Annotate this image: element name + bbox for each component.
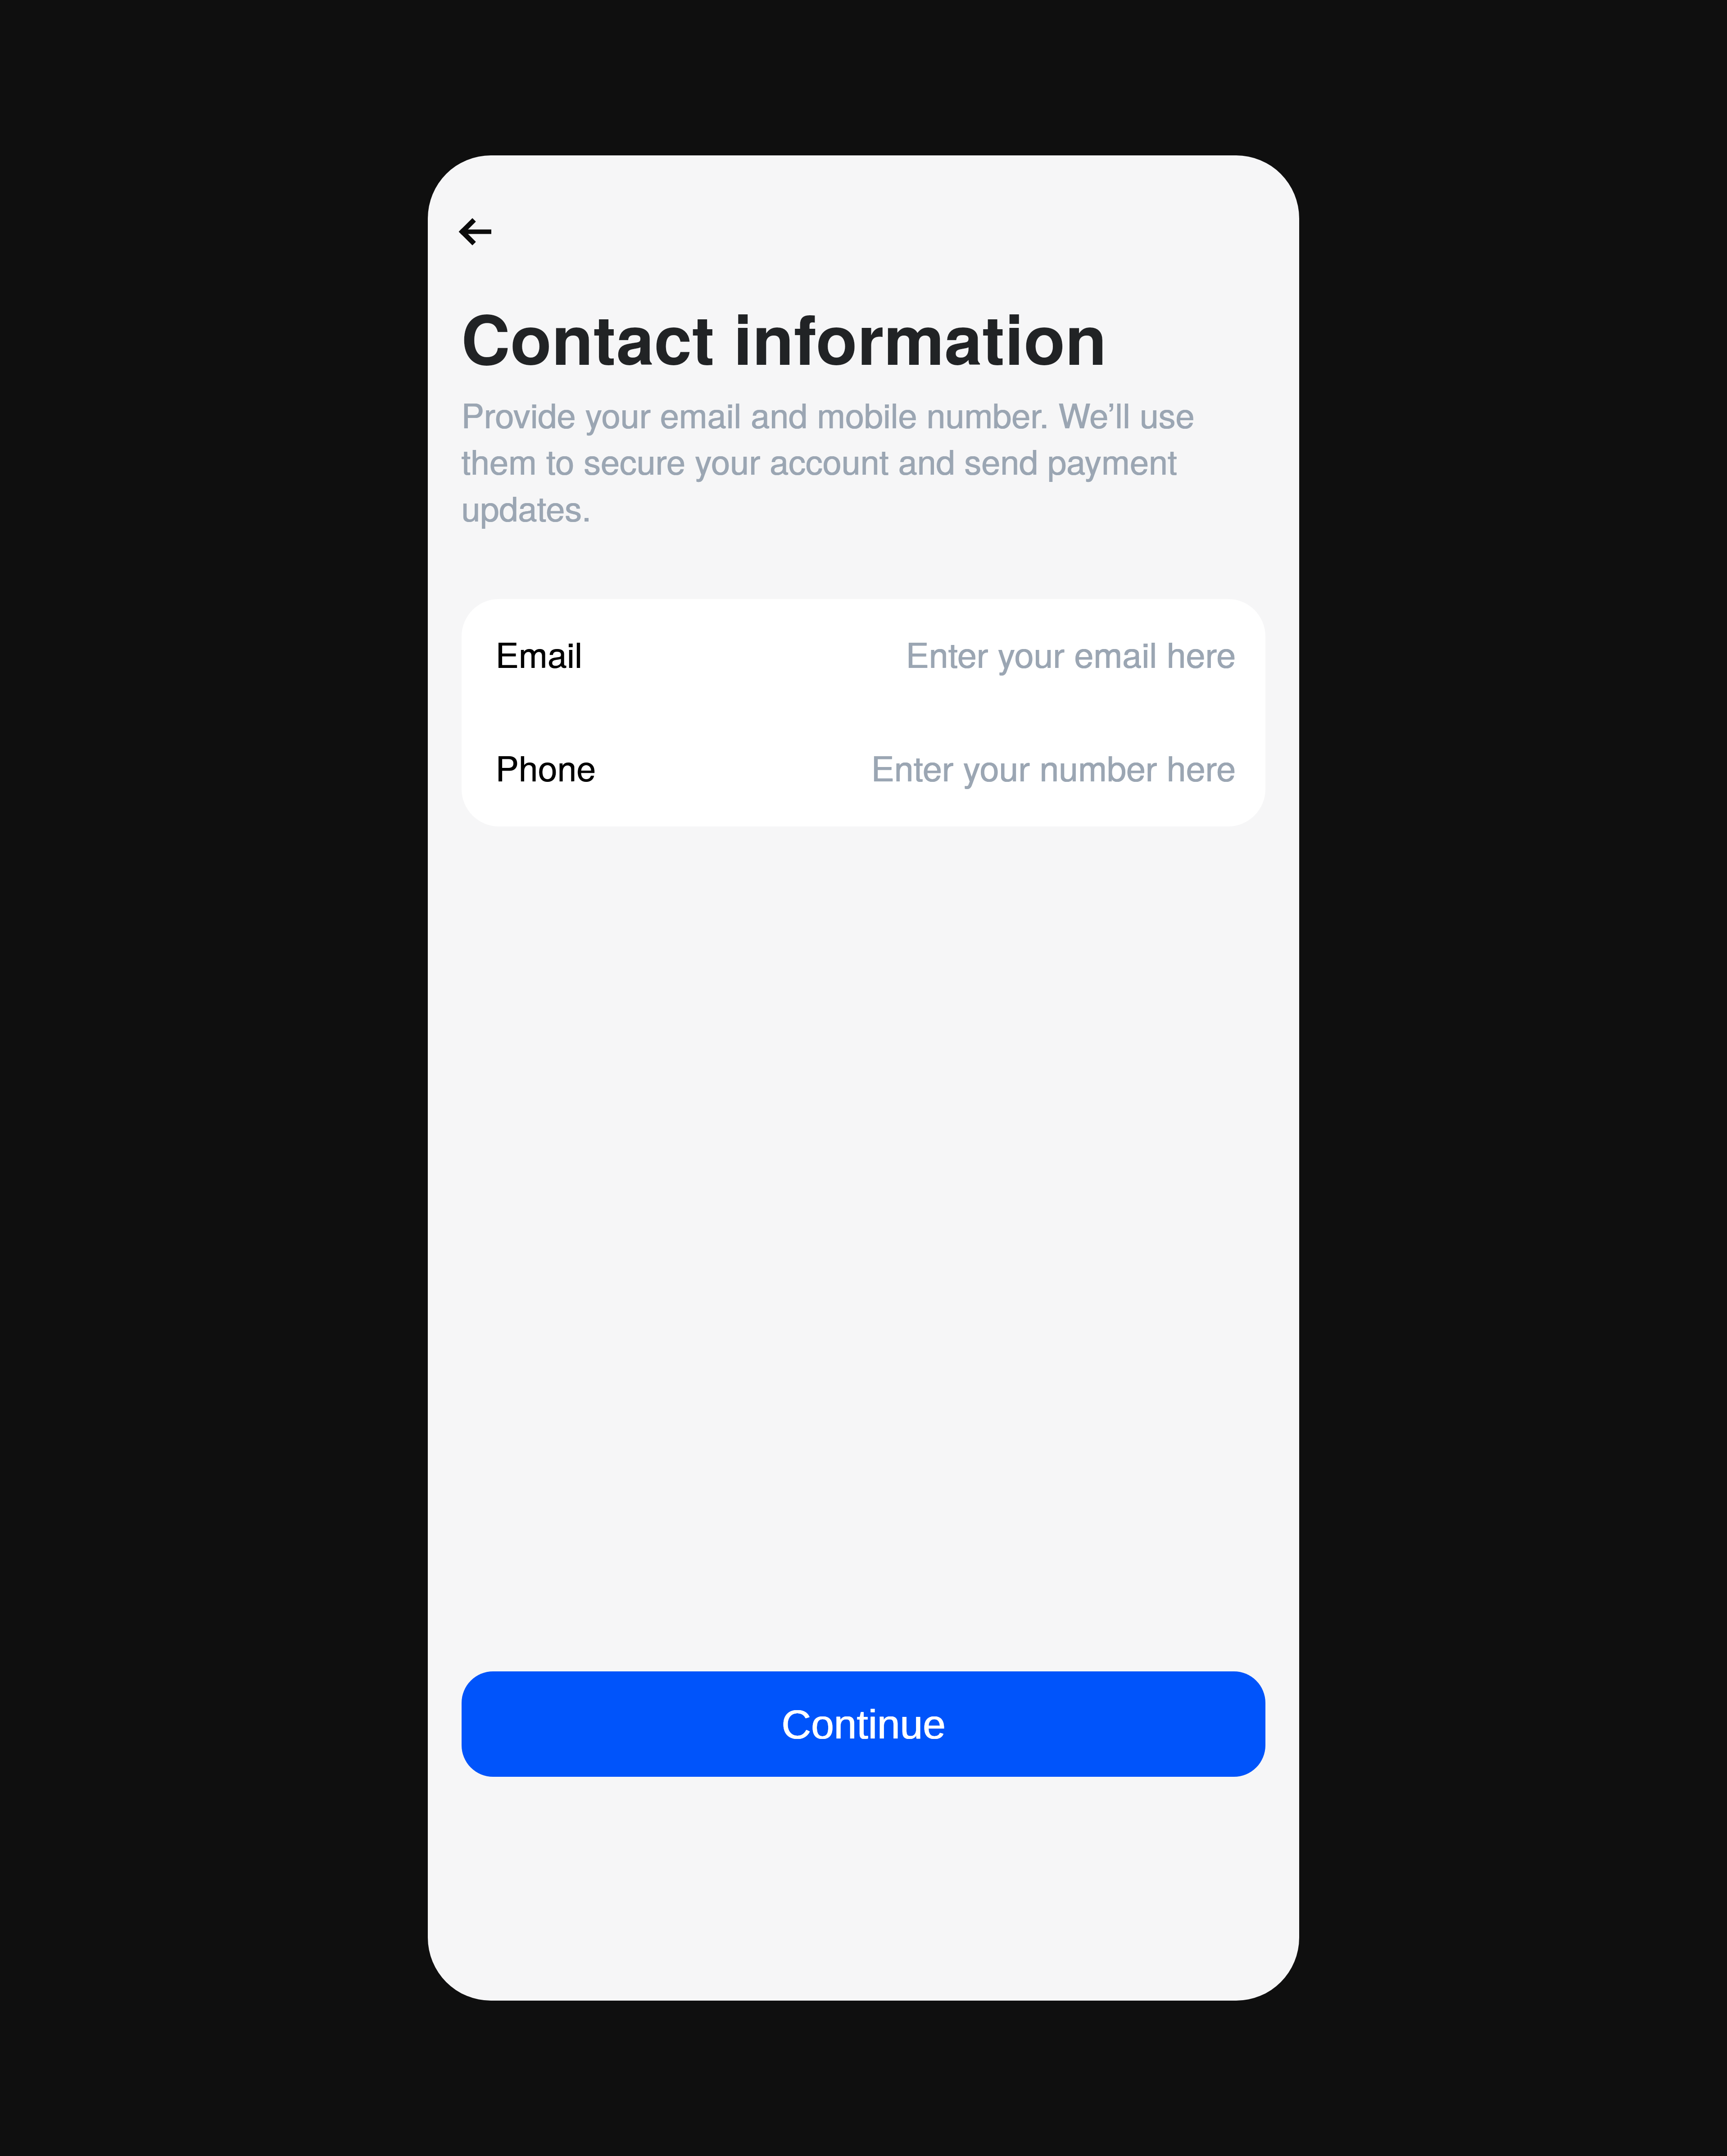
staticText: Continue <box>781 1702 946 1747</box>
staticText: Phone <box>495 742 596 791</box>
button[interactable]: Continue <box>462 1671 1265 1777</box>
staticText: Email <box>495 628 582 678</box>
staticText: Enter your number here <box>871 742 1236 791</box>
button[interactable]: Email <box>462 599 1265 713</box>
staticText: Contact information <box>461 288 1107 386</box>
staticText: Provide your email and mobile number. We… <box>461 389 1275 531</box>
staticText: Enter your email here <box>906 628 1236 678</box>
button[interactable]: Phone <box>462 713 1265 826</box>
button[interactable]: Back <box>436 195 513 272</box>
